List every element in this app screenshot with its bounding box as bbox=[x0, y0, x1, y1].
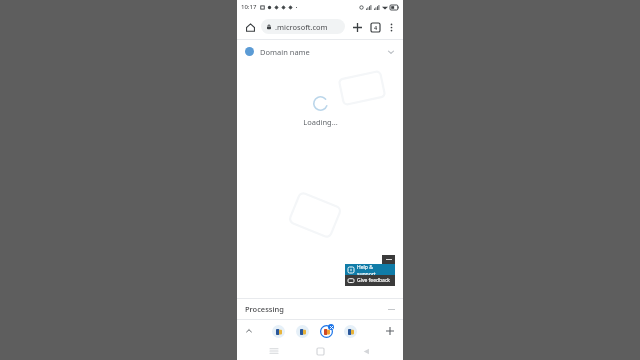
staticText: .microsoft.com bbox=[275, 22, 328, 32]
button[interactable]: Give feedback bbox=[345, 275, 395, 286]
button[interactable]: .microsoft.com bbox=[261, 19, 345, 34]
button[interactable]: Active app bbox=[319, 324, 334, 339]
staticText: Help & support bbox=[357, 264, 392, 275]
button[interactable]: Expand bbox=[243, 325, 255, 337]
button[interactable]: More options bbox=[384, 20, 398, 34]
button[interactable]: New tab bbox=[349, 19, 365, 35]
button[interactable]: App bbox=[271, 324, 286, 339]
button[interactable]: Help & support bbox=[345, 264, 395, 275]
button[interactable]: Home bbox=[242, 19, 258, 35]
button[interactable]: Domain name bbox=[237, 40, 403, 63]
button[interactable]: App bbox=[343, 324, 358, 339]
staticText: 10:17 bbox=[241, 3, 257, 11]
button[interactable]: Back bbox=[357, 342, 375, 360]
staticText: Give feedback bbox=[357, 277, 390, 284]
button[interactable]: Add app bbox=[383, 324, 397, 338]
button[interactable]: Processing bbox=[237, 299, 403, 319]
button[interactable]: Home bbox=[311, 342, 329, 360]
staticText: Processing bbox=[245, 304, 284, 314]
button[interactable]: Tabs, 4 open bbox=[367, 19, 383, 35]
button[interactable]: Recent apps bbox=[265, 342, 283, 360]
button[interactable]: App bbox=[295, 324, 310, 339]
staticText: 4 bbox=[374, 24, 378, 31]
staticText: Loading... bbox=[303, 117, 338, 127]
staticText: Domain name bbox=[260, 47, 310, 57]
button[interactable]: Minimize bbox=[382, 255, 395, 264]
